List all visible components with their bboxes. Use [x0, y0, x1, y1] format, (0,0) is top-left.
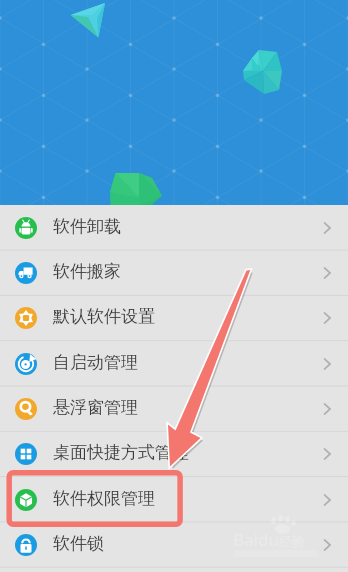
staticText: 软件搬家 [53, 261, 121, 282]
button[interactable]: 软件权限管理 [0, 477, 348, 522]
button[interactable]: 软件搬家 [0, 250, 348, 295]
staticText: 自启动管理 [53, 352, 138, 373]
button[interactable]: 自启动管理 [0, 341, 348, 386]
staticText: 桌面快捷方式管理 [53, 442, 189, 463]
button[interactable]: 默认软件设置 [0, 295, 348, 340]
staticText: 软件锁 [53, 533, 104, 554]
staticText: 默认软件设置 [53, 306, 155, 327]
staticText: 悬浮窗管理 [53, 397, 138, 418]
staticText: 软件卸载 [53, 216, 121, 237]
button[interactable]: 桌面快捷方式管理 [0, 431, 348, 476]
button[interactable]: 悬浮窗管理 [0, 386, 348, 431]
staticText: 软件权限管理 [53, 488, 155, 509]
button[interactable]: 软件卸载 [0, 205, 348, 250]
button[interactable]: 软件锁 [0, 522, 348, 567]
